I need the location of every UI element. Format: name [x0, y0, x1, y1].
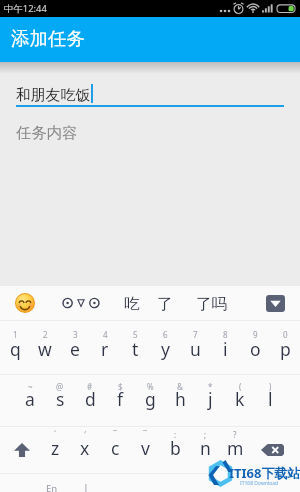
- staticText: u: [190, 337, 201, 361]
- staticText: 和朋友吃饭: [16, 86, 90, 105]
- staticText: 6: [163, 329, 168, 340]
- staticText: v: [141, 436, 150, 460]
- staticText: $: [118, 381, 123, 392]
- staticText: a: [25, 387, 35, 411]
- staticText: i: [223, 337, 228, 361]
- staticText: c: [111, 436, 120, 460]
- button[interactable]: 2: [30, 321, 60, 374]
- button[interactable]: 1: [0, 321, 30, 374]
- button[interactable]: $: [105, 375, 135, 426]
- button[interactable]: ~: [15, 375, 45, 426]
- button[interactable]: 6: [150, 321, 180, 374]
- staticText: 添加任务: [11, 27, 85, 50]
- staticText: IT168 Download: [240, 480, 279, 487]
- staticText: x: [80, 436, 90, 460]
- staticText: s: [56, 387, 65, 411]
- button[interactable]: Emoticon: [61, 294, 101, 312]
- button[interactable]: 5: [120, 321, 150, 374]
- button[interactable]: ¯: [100, 427, 130, 473]
- staticText: |: [83, 481, 89, 492]
- button[interactable]: 3: [60, 321, 90, 374]
- staticText: k: [235, 387, 245, 411]
- staticText: d: [85, 387, 96, 411]
- staticText: ITI68下载站: [229, 464, 300, 482]
- button[interactable]: En: [46, 482, 58, 492]
- staticText: ?: [233, 429, 237, 440]
- button[interactable]: ¯: [130, 427, 160, 473]
- staticText: l: [268, 387, 273, 411]
- staticText: :: [174, 429, 177, 440]
- button[interactable]: Emoji: [15, 293, 35, 313]
- button[interactable]: ´: [40, 427, 70, 473]
- staticText: (: [239, 381, 242, 392]
- staticText: 7: [193, 329, 198, 340]
- button[interactable]: 了吗: [196, 294, 228, 314]
- staticText: w: [38, 337, 52, 361]
- staticText: 任务内容: [16, 123, 78, 142]
- staticText: 5: [133, 329, 138, 340]
- button[interactable]: ?: [220, 427, 250, 473]
- button[interactable]: 9: [240, 321, 270, 374]
- staticText: y: [161, 337, 170, 361]
- staticText: 1: [13, 329, 18, 340]
- button[interactable]: #: [75, 375, 105, 426]
- staticText: 8: [223, 329, 228, 340]
- button[interactable]: :: [160, 427, 190, 473]
- staticText: ′: [84, 429, 86, 440]
- button[interactable]: 7: [180, 321, 210, 374]
- staticText: 9: [253, 329, 258, 340]
- staticText: *: [208, 381, 213, 392]
- staticText: t: [132, 337, 139, 361]
- button[interactable]: Delete: [247, 427, 297, 473]
- button[interactable]: ): [255, 375, 285, 426]
- button[interactable]: ;: [190, 427, 220, 473]
- staticText: n: [200, 436, 211, 460]
- staticText: 3: [73, 329, 78, 340]
- button[interactable]: %: [135, 375, 165, 426]
- staticText: e: [70, 337, 80, 361]
- staticText: z: [51, 436, 60, 460]
- staticText: g: [145, 387, 156, 411]
- button[interactable]: Expand suggestions: [266, 295, 285, 312]
- button[interactable]: 了: [157, 294, 173, 314]
- staticText: 0: [283, 329, 288, 340]
- button[interactable]: 8: [210, 321, 240, 374]
- staticText: r: [101, 337, 109, 361]
- staticText: %: [147, 381, 154, 392]
- staticText: p: [280, 337, 291, 361]
- staticText: &: [177, 381, 183, 392]
- button[interactable]: 4: [90, 321, 120, 374]
- staticText: 中午12:44: [4, 2, 47, 15]
- staticText: h: [175, 387, 186, 411]
- staticText: ;: [204, 429, 207, 440]
- staticText: ¯: [143, 429, 147, 440]
- button[interactable]: *: [195, 375, 225, 426]
- staticText: m: [227, 436, 244, 460]
- staticText: ~: [28, 381, 33, 392]
- button[interactable]: @: [45, 375, 75, 426]
- staticText: f: [117, 387, 124, 411]
- button[interactable]: &: [165, 375, 195, 426]
- button[interactable]: (: [225, 375, 255, 426]
- staticText: o: [250, 337, 261, 361]
- staticText: ¯: [113, 429, 117, 440]
- staticText: @: [56, 381, 64, 392]
- button[interactable]: 吃: [124, 294, 140, 314]
- button[interactable]: ′: [70, 427, 100, 473]
- staticText: q: [10, 337, 21, 361]
- staticText: 2: [43, 329, 48, 340]
- staticText: 4: [103, 329, 108, 340]
- staticText: #: [87, 381, 93, 392]
- staticText: ´: [54, 429, 57, 440]
- staticText: j: [208, 387, 213, 411]
- button[interactable]: 0: [270, 321, 300, 374]
- staticText: b: [170, 436, 181, 460]
- staticText: ): [269, 381, 272, 392]
- button[interactable]: Shift: [2, 427, 42, 473]
